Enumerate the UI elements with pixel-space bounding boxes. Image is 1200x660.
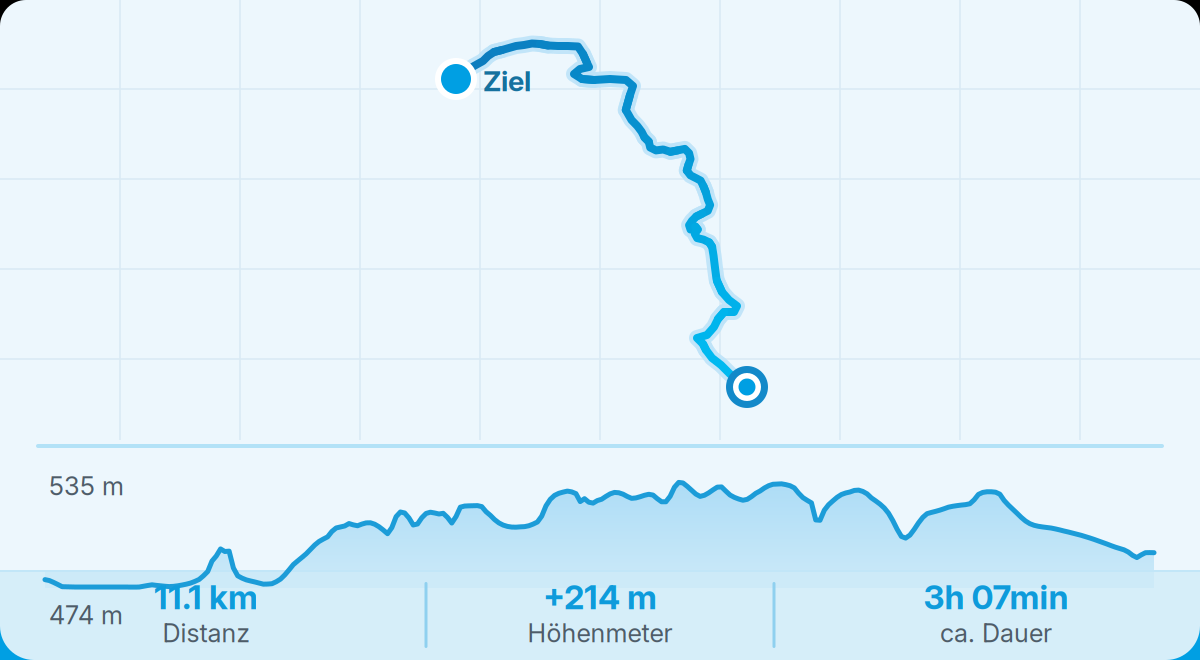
button[interactable]: 3h 07min [0, 0, 1200, 660]
staticText: 474 m [49, 600, 123, 630]
button[interactable]: 11.1 km [0, 0, 1200, 660]
staticText: +214 m [543, 577, 657, 617]
button[interactable]: +214 m [0, 0, 1200, 660]
staticText: Ziel [483, 64, 531, 98]
staticText: 11.1 km [154, 577, 258, 617]
staticText: ca. Dauer [940, 618, 1052, 648]
staticText: 3h 07min [923, 577, 1068, 617]
staticText: Distanz [162, 618, 249, 648]
staticText: 535 m [49, 471, 124, 501]
staticText: Höhenmeter [527, 618, 672, 648]
